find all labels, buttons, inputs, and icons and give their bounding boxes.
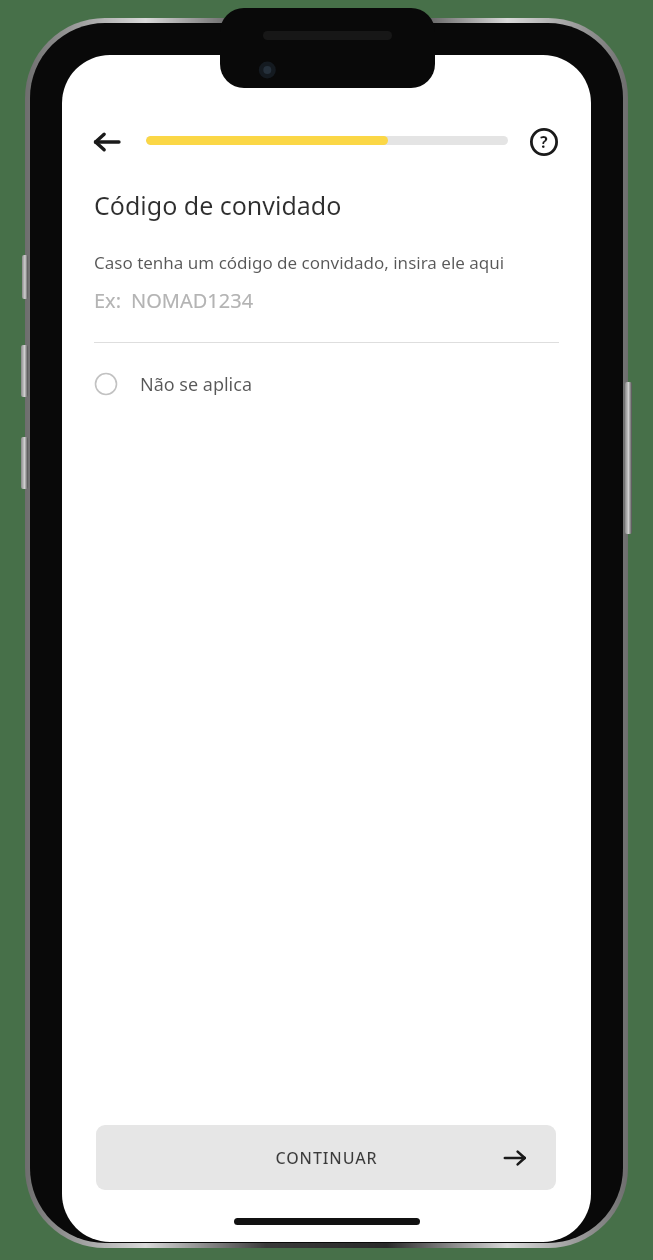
button[interactable]: Voltar [83, 118, 131, 166]
staticText: Código de convidado [94, 188, 342, 222]
button[interactable]: Não se aplica [82, 360, 322, 408]
staticText: ? [540, 131, 548, 153]
staticText: Caso tenha um código de convidado, insir… [94, 251, 505, 274]
staticText: Ex: [94, 287, 122, 314]
staticText: Não se aplica [140, 372, 252, 397]
button[interactable]: Ex: [94, 287, 559, 343]
button[interactable]: CONTINUAR [96, 1125, 556, 1190]
button[interactable]: Ajuda [520, 118, 568, 166]
staticText: NOMAD1234 [131, 287, 254, 314]
staticText: CONTINUAR [275, 1147, 378, 1169]
